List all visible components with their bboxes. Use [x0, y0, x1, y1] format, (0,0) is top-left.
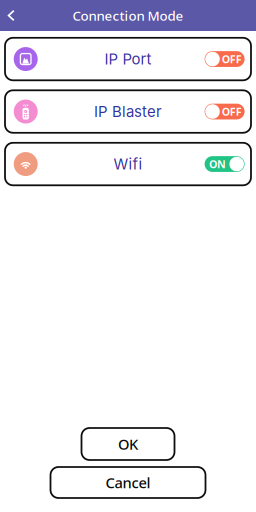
staticText: Connection Mode: [72, 7, 183, 24]
staticText: IP Blaster: [94, 102, 162, 121]
staticText: OK: [118, 434, 138, 454]
button[interactable]: IP Port: [5, 38, 251, 80]
staticText: ON: [209, 157, 226, 171]
staticText: OFF: [222, 52, 242, 66]
staticText: Cancel: [105, 473, 150, 492]
button[interactable]: IP Blaster: [5, 90, 251, 133]
button[interactable]: Cancel: [50, 467, 205, 498]
button[interactable]: Wifi: [5, 143, 251, 185]
staticText: OFF: [222, 104, 242, 119]
staticText: IP Port: [104, 50, 151, 68]
button[interactable]: OK: [81, 428, 174, 460]
button[interactable]: Back: [0, 4, 22, 27]
staticText: Wifi: [113, 155, 142, 173]
